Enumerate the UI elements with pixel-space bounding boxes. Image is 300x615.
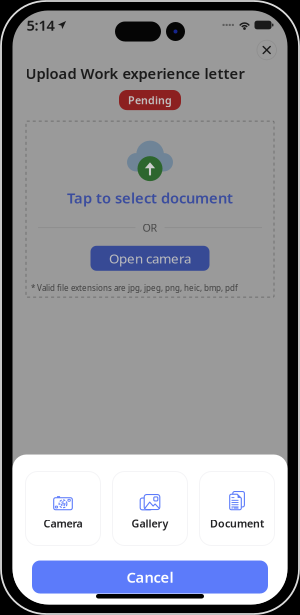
button[interactable]: Gallery	[112, 471, 187, 545]
staticText: Tap to select document	[67, 188, 233, 208]
button[interactable]: Open camera	[90, 246, 209, 271]
button[interactable]: Close	[257, 40, 276, 60]
button[interactable]: Tap to select document	[67, 188, 233, 208]
staticText: 5:14	[26, 15, 54, 35]
staticText: Cancel	[126, 567, 173, 587]
button[interactable]: Camera	[25, 471, 100, 545]
staticText: Gallery	[131, 516, 168, 530]
staticText: Pending	[128, 93, 172, 107]
staticText: Upload Work experience letter	[25, 63, 244, 83]
staticText: Document	[210, 516, 264, 530]
staticText: * Valid file extensions are jpg, jpeg, p…	[31, 282, 238, 293]
staticText: Camera	[43, 516, 82, 530]
staticText: OR	[142, 221, 157, 235]
button[interactable]: Document	[199, 471, 274, 545]
staticText: Open camera	[109, 249, 191, 267]
button[interactable]: Cancel	[32, 560, 268, 593]
